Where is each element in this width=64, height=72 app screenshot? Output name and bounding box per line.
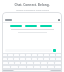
- button[interactable]: Return: [51, 70, 61, 72]
- button[interactable]: Symbols: [3, 70, 13, 72]
- button[interactable]: [10, 25, 22, 27]
- button[interactable]: [40, 25, 52, 27]
- button[interactable]: [25, 25, 37, 27]
- button[interactable]: Send: [53, 49, 56, 52]
- button[interactable]: Space: [14, 70, 50, 72]
- staticText: Chat. Connect. Belong.: [14, 3, 50, 7]
- button[interactable]: [5, 18, 60, 21]
- staticText: Private messaging made simple: [16, 9, 49, 12]
